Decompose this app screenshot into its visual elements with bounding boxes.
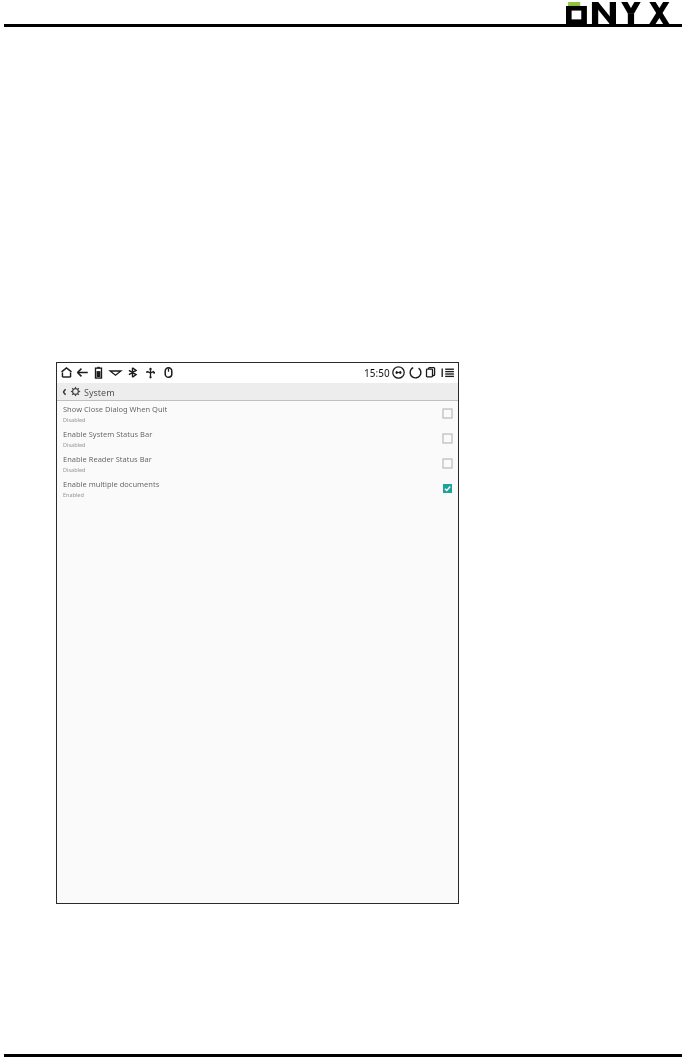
staticText: Enable System Status Bar: [63, 429, 153, 439]
button[interactable]: Brightness: [391, 365, 406, 380]
button[interactable]: Enable Reader Status Bar: [56, 451, 459, 476]
button[interactable]: Show Close Dialog When Quit: [56, 401, 459, 426]
staticText: System: [84, 386, 115, 398]
button[interactable]: Checked: [443, 484, 452, 493]
button[interactable]: Mouse: [161, 365, 176, 380]
button[interactable]: Home: [59, 365, 74, 380]
button[interactable]: Unchecked: [443, 409, 452, 418]
button[interactable]: Unchecked: [443, 459, 452, 468]
button[interactable]: Bluetooth: [125, 365, 140, 380]
staticText: Disabled: [63, 441, 86, 448]
button[interactable]: Menu: [441, 365, 456, 380]
button[interactable]: Enable multiple documents: [56, 476, 459, 501]
button[interactable]: Back: [56, 383, 459, 400]
staticText: Disabled: [63, 466, 86, 473]
staticText: Show Close Dialog When Quit: [63, 404, 168, 414]
staticText: Enable Reader Status Bar: [63, 454, 152, 464]
button[interactable]: Battery: [91, 365, 106, 380]
button[interactable]: Apps: [425, 365, 440, 380]
staticText: Disabled: [63, 416, 86, 423]
button[interactable]: Enable System Status Bar: [56, 426, 459, 451]
button[interactable]: Back: [75, 365, 90, 380]
button[interactable]: Wi-Fi: [108, 365, 123, 380]
button[interactable]: Refresh: [408, 365, 423, 380]
staticText: Enabled: [63, 491, 84, 498]
button[interactable]: Unchecked: [443, 434, 452, 443]
other: ONYX logo: [566, 2, 678, 24]
staticText: Enable multiple documents: [63, 479, 160, 489]
other: Settings: [70, 386, 81, 397]
button[interactable]: USB: [143, 365, 158, 380]
other: Back: [60, 388, 68, 396]
staticText: 15:50: [364, 366, 390, 380]
